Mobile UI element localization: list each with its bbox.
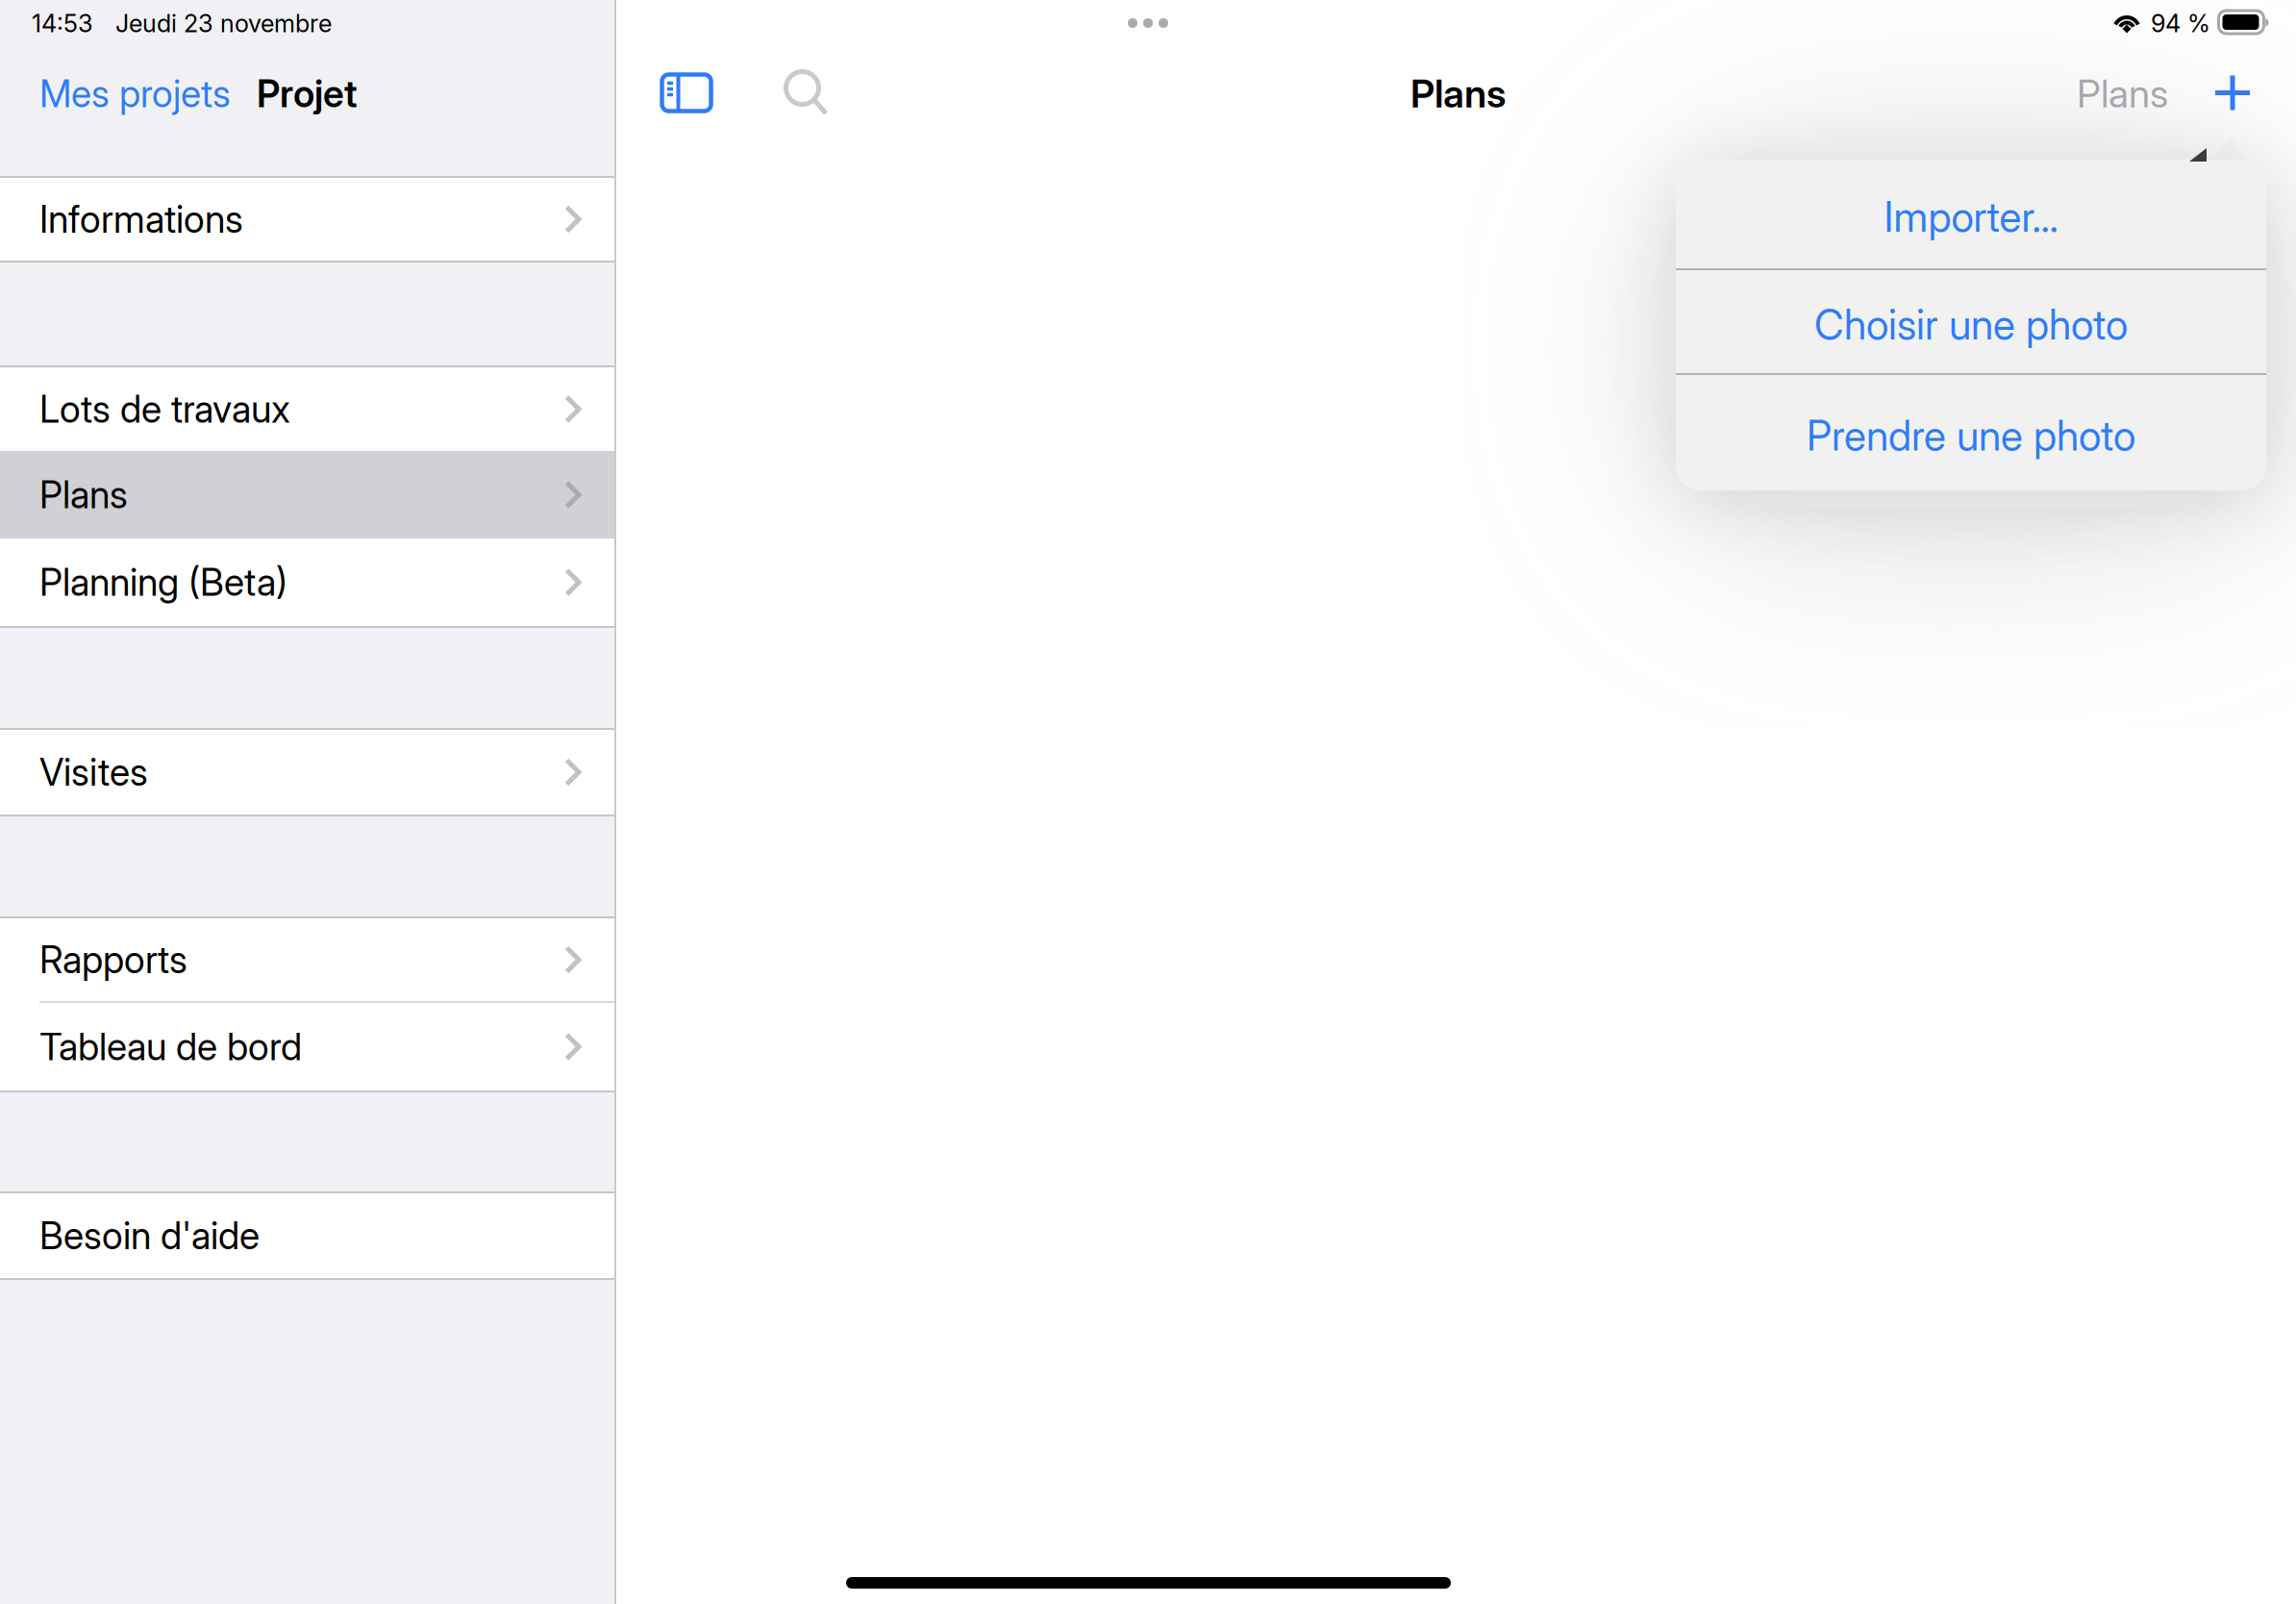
button[interactable]: Prendre une photo bbox=[1676, 375, 2266, 490]
staticText: Lots de travaux bbox=[39, 387, 290, 432]
staticText: Plans bbox=[39, 472, 128, 517]
button[interactable]: Importer... bbox=[1676, 160, 2266, 268]
staticText: 94 % bbox=[2151, 9, 2210, 38]
button[interactable]: Hide sidebar bbox=[660, 72, 713, 113]
staticText: Choisir une photo bbox=[1814, 300, 2128, 349]
button[interactable]: Tableau de bord bbox=[0, 1003, 614, 1090]
staticText: Visites bbox=[39, 750, 148, 795]
button[interactable]: Informations bbox=[0, 178, 614, 261]
button[interactable]: Rapports bbox=[0, 918, 614, 1001]
staticText: Besoin d'aide bbox=[39, 1213, 260, 1258]
staticText: Plans bbox=[2077, 70, 2168, 117]
button[interactable]: Planning (Beta) bbox=[0, 539, 614, 626]
button[interactable]: Search bbox=[784, 69, 829, 115]
staticText: Planning (Beta) bbox=[39, 560, 287, 605]
button[interactable]: Mes projets bbox=[39, 71, 231, 116]
staticText: Jeudi 23 novembre bbox=[115, 9, 332, 38]
staticText: Informations bbox=[39, 197, 243, 242]
button[interactable]: Plans bbox=[2077, 70, 2168, 117]
button[interactable]: Visites bbox=[0, 730, 614, 815]
staticText: Mes projets bbox=[39, 71, 231, 116]
staticText: Prendre une photo bbox=[1807, 411, 2135, 460]
staticText: Tableau de bord bbox=[39, 1024, 302, 1069]
staticText: Projet bbox=[231, 71, 358, 116]
staticText: Importer... bbox=[1884, 192, 2058, 241]
button[interactable]: Add plan bbox=[2213, 74, 2252, 112]
button[interactable]: Choisir une photo bbox=[1676, 270, 2266, 373]
staticText: Rapports bbox=[39, 937, 187, 982]
button[interactable]: Plans bbox=[0, 451, 614, 539]
button[interactable]: Lots de travaux bbox=[0, 367, 614, 451]
button[interactable]: Besoin d'aide bbox=[0, 1193, 614, 1278]
staticText: Plans bbox=[1410, 70, 1506, 117]
staticText: 14:53 bbox=[32, 9, 93, 38]
